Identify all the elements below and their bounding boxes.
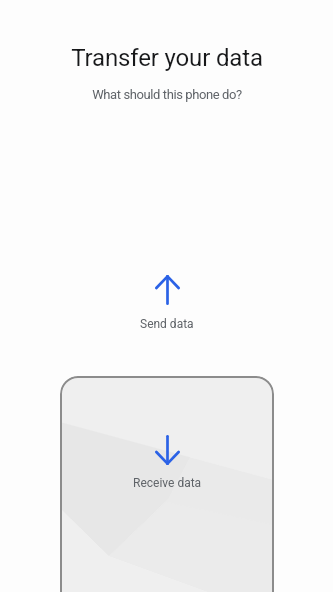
- staticText: Receive data: [133, 476, 202, 490]
- staticText: Send data: [140, 317, 194, 331]
- button[interactable]: Receive data: [60, 376, 274, 592]
- staticText: Transfer your data: [71, 44, 263, 72]
- button[interactable]: Send data: [140, 275, 194, 331]
- staticText: What should this phone do?: [92, 87, 242, 102]
